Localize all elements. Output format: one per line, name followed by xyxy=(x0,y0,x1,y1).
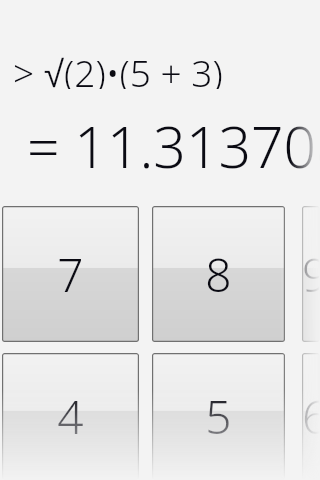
button[interactable]: 7 xyxy=(2,206,139,342)
staticText: 8 xyxy=(205,243,232,306)
button[interactable]: 5 xyxy=(152,353,285,480)
button[interactable]: 8 xyxy=(152,206,285,342)
staticText: > √(2)•(5 + 3) xyxy=(13,47,223,89)
button[interactable]: 4 xyxy=(2,353,139,480)
button[interactable]: 9 xyxy=(302,206,320,342)
staticText: 9 xyxy=(302,243,320,306)
staticText: 7 xyxy=(57,243,84,306)
staticText: = 11.313708498 xyxy=(27,107,320,171)
staticText: 6 xyxy=(302,385,320,448)
staticText: 5 xyxy=(205,385,232,448)
button[interactable]: 6 xyxy=(302,353,320,480)
staticText: 4 xyxy=(57,385,84,448)
